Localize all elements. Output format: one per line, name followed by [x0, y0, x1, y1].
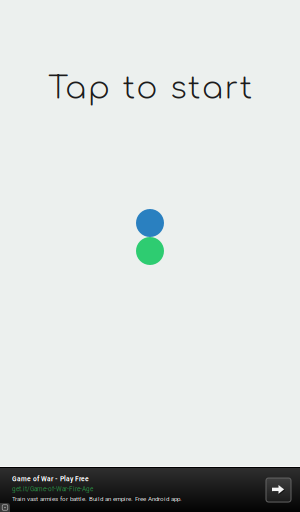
staticText: Game of War - Play Free	[12, 475, 89, 483]
staticText: Train vast armies for battle. Build an e…	[12, 495, 182, 503]
button[interactable]: Open ad	[266, 478, 291, 502]
button[interactable]: Ad choices	[0, 503, 10, 512]
staticText: get.it/Game-of-War-Fire-Age	[12, 485, 93, 493]
staticText: Tap to start	[48, 71, 252, 106]
